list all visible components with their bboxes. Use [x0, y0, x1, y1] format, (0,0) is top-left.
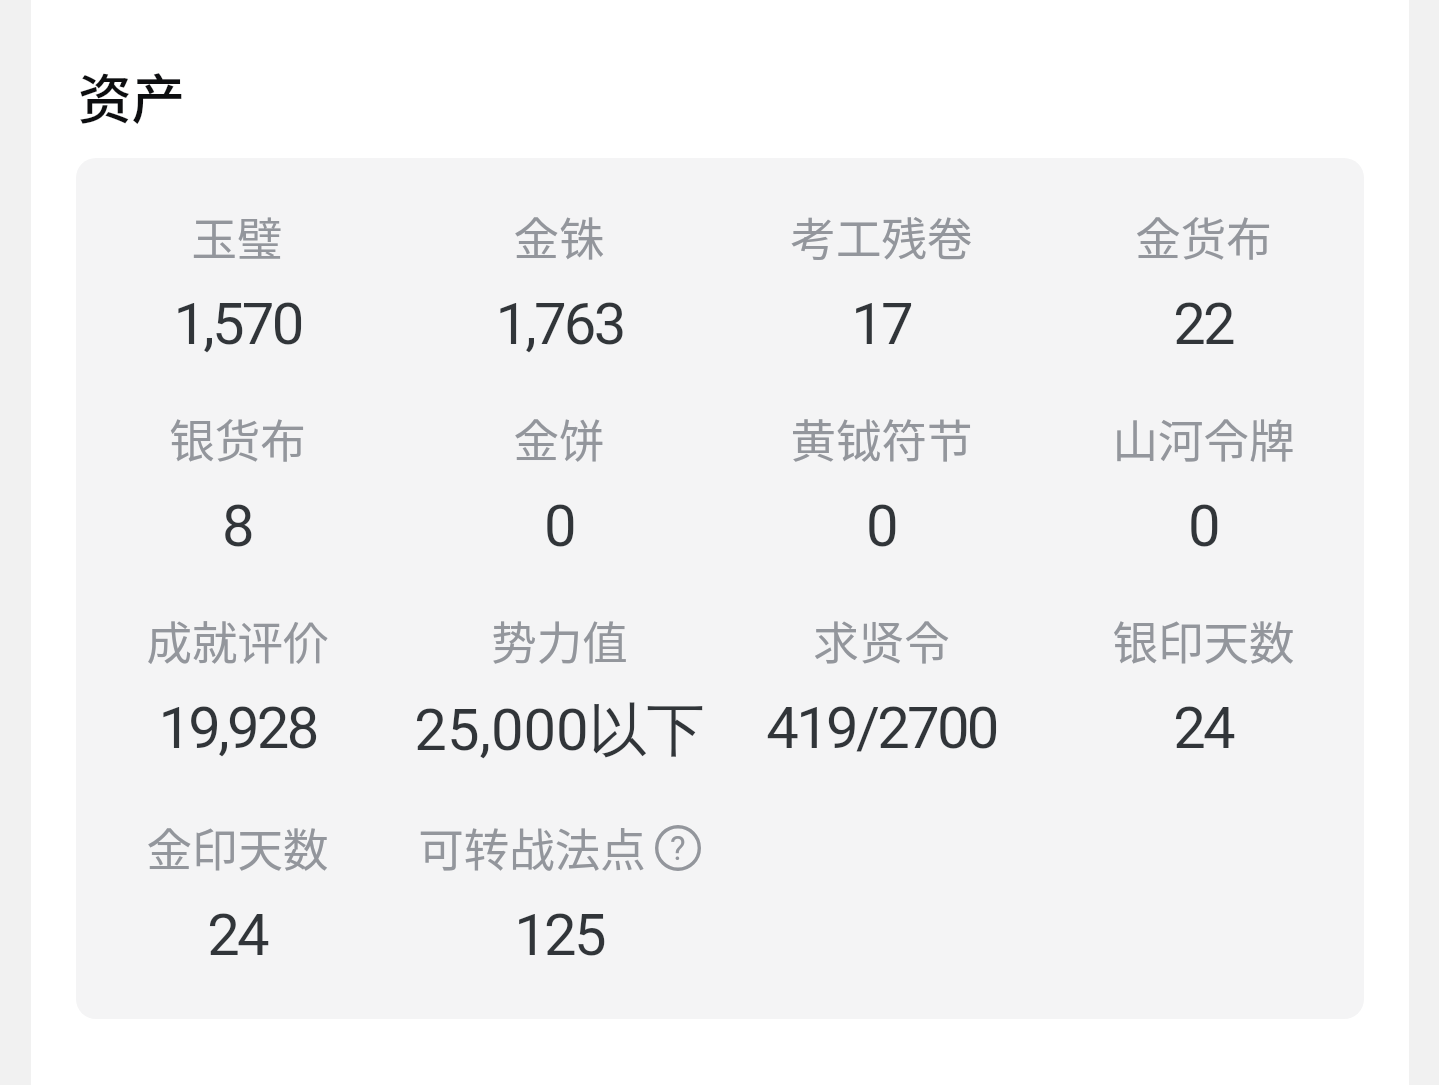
staticText: 玉璧: [191, 203, 283, 269]
staticText: 0: [866, 492, 896, 560]
staticText: 24: [207, 901, 267, 969]
staticText: 125: [514, 901, 604, 969]
button[interactable]: 玉璧: [76, 203, 398, 358]
staticText: 求贤令: [813, 607, 950, 673]
staticText: 金铢: [513, 203, 605, 269]
button[interactable]: 考工残卷: [720, 203, 1042, 358]
button[interactable]: 金饼: [398, 405, 720, 560]
staticText: 成就评价: [146, 607, 329, 673]
staticText: 24: [1173, 694, 1233, 762]
button[interactable]: 帮助说明: [655, 825, 701, 871]
staticText: ?: [670, 829, 686, 868]
staticText: 419/2700: [766, 694, 997, 762]
staticText: 1,570: [173, 290, 302, 358]
staticText: 25,000以下: [414, 694, 705, 767]
staticText: 22: [1173, 290, 1233, 358]
staticText: 金货布: [1135, 203, 1272, 269]
staticText: 山河令牌: [1112, 405, 1295, 471]
button[interactable]: 金印天数: [76, 814, 398, 969]
staticText: 8: [222, 492, 252, 560]
staticText: 黄钺符节: [790, 405, 973, 471]
staticText: 考工残卷: [790, 203, 973, 269]
staticText: 资产: [78, 57, 185, 134]
button[interactable]: 金铢: [398, 203, 720, 358]
staticText: 金饼: [513, 405, 605, 471]
staticText: 0: [544, 492, 574, 560]
button[interactable]: 成就评价: [76, 607, 398, 762]
staticText: 银货布: [169, 405, 306, 471]
staticText: 19,928: [158, 694, 317, 762]
staticText: 0: [1188, 492, 1218, 560]
staticText: 1,763: [495, 290, 624, 358]
staticText: 金印天数: [146, 814, 329, 880]
staticText: 可转战法点: [418, 814, 646, 880]
button[interactable]: 银印天数: [1042, 607, 1364, 762]
button[interactable]: 黄钺符节: [720, 405, 1042, 560]
button[interactable]: 可转战法点: [398, 814, 720, 969]
button[interactable]: 势力值: [398, 607, 720, 767]
button[interactable]: 金货布: [1042, 203, 1364, 358]
button[interactable]: 山河令牌: [1042, 405, 1364, 560]
staticText: 势力值: [491, 607, 628, 673]
staticText: 17: [851, 290, 911, 358]
staticText: 银印天数: [1112, 607, 1295, 673]
button[interactable]: 银货布: [76, 405, 398, 560]
button[interactable]: 求贤令: [720, 607, 1042, 762]
